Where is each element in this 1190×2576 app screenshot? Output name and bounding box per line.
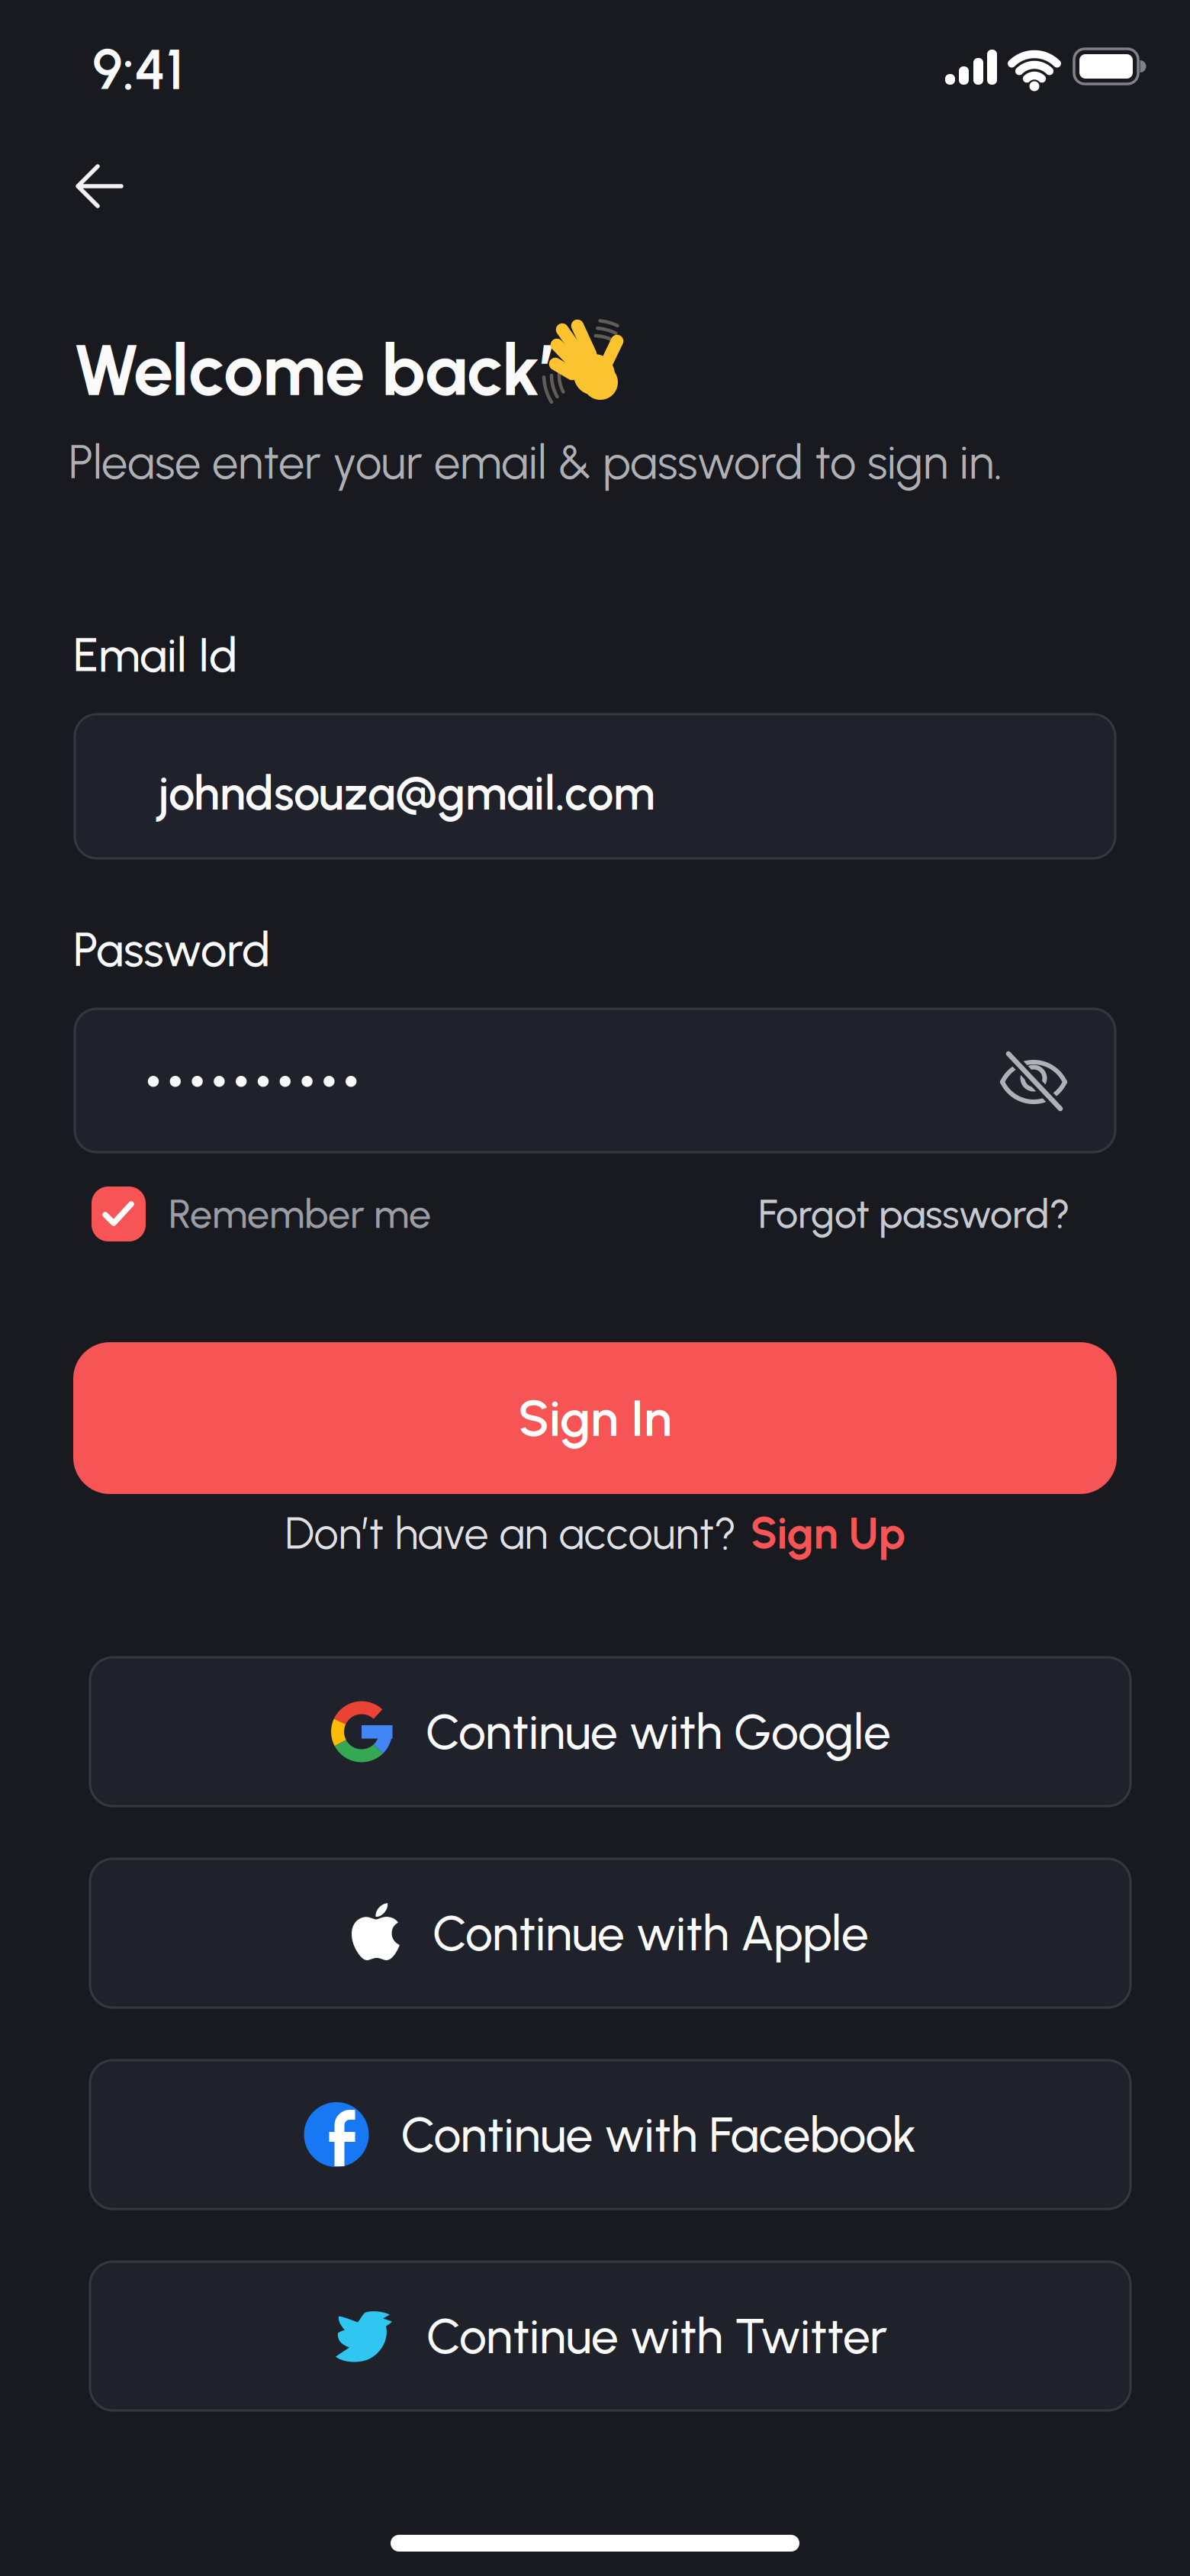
staticText: johndsouza@gmail.com xyxy=(158,765,654,821)
staticText: Sign In xyxy=(518,1388,672,1449)
staticText: Continue with Facebook xyxy=(401,2105,917,2164)
button[interactable]: Continue with Apple xyxy=(90,1859,1130,2008)
button[interactable]: Remember me xyxy=(92,1187,146,1241)
staticText: 9:41 xyxy=(92,36,184,103)
button[interactable]: Back xyxy=(74,166,125,207)
button[interactable]: Sign Up xyxy=(750,1507,905,1559)
staticText: Forgot password? xyxy=(758,1190,1070,1238)
staticText: Sign Up xyxy=(750,1507,905,1559)
staticText: Welcome back’ xyxy=(73,327,555,413)
button[interactable]: Continue with Google xyxy=(90,1657,1130,1806)
staticText: Remember me xyxy=(169,1190,431,1238)
button[interactable]: Sign In xyxy=(73,1342,1117,1494)
button[interactable]: Continue with Twitter xyxy=(90,2262,1130,2410)
button[interactable]: Show password xyxy=(995,1054,1072,1112)
button[interactable]: Forgot password? xyxy=(758,1190,1070,1238)
staticText: Continue with Twitter xyxy=(426,2307,887,2365)
staticText: Email Id xyxy=(73,627,237,683)
staticText: Continue with Google xyxy=(426,1702,891,1761)
staticText: Password xyxy=(73,922,270,978)
staticText: Continue with Apple xyxy=(433,1904,869,1962)
button[interactable]: Continue with Facebook xyxy=(90,2060,1130,2209)
staticText: Don’t have an account? xyxy=(285,1507,737,1559)
staticText: Please enter your email & password to si… xyxy=(69,434,1002,490)
